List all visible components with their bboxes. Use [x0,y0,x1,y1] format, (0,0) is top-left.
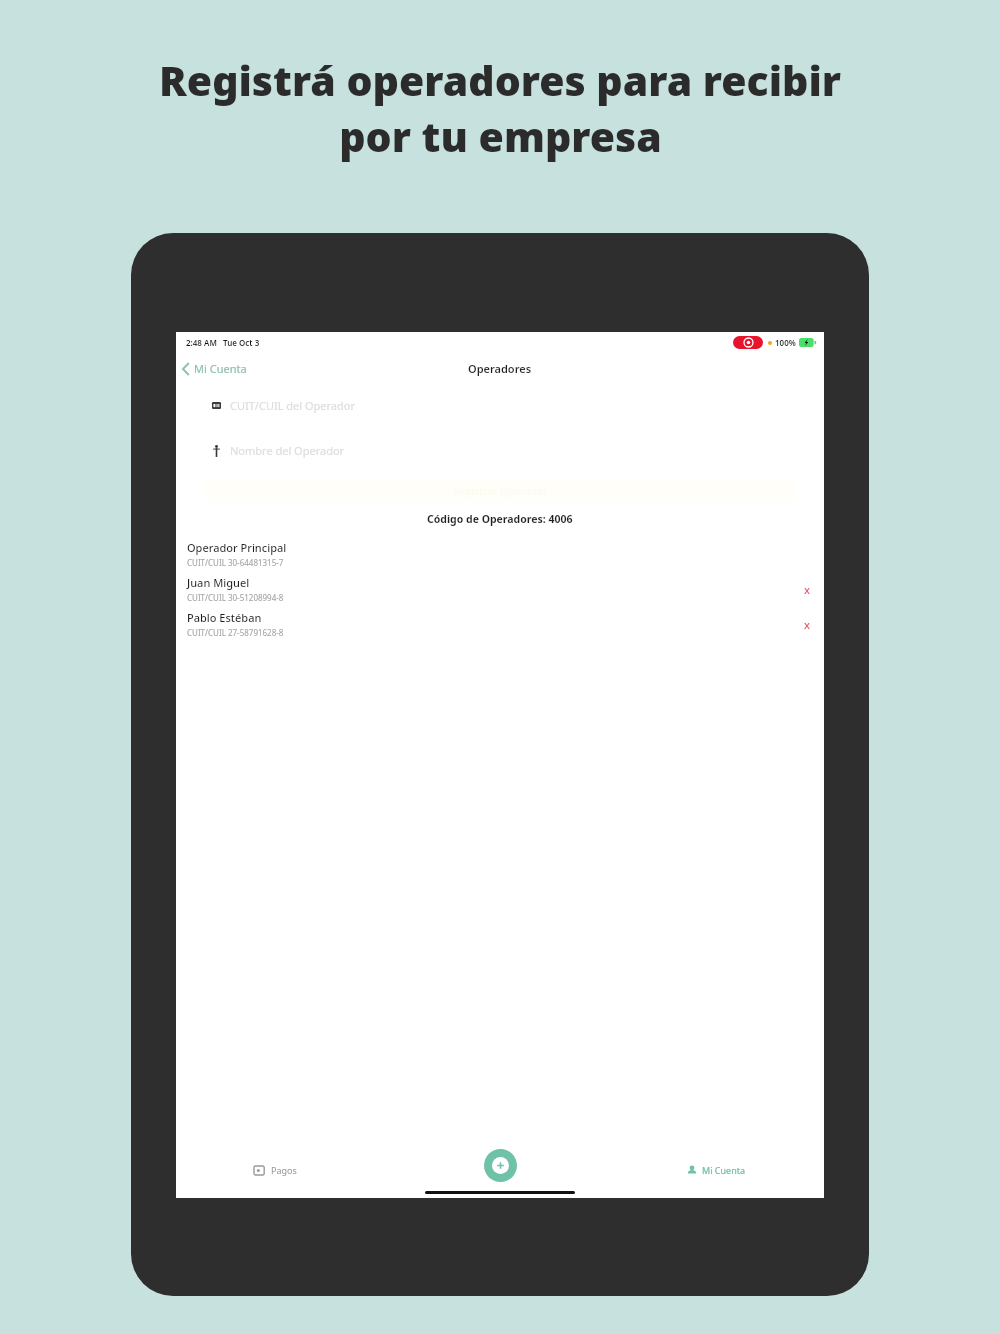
button[interactable]: Operador Principal [176,536,824,571]
staticText: Mi Cuenta [702,1164,746,1176]
staticText: CUIT/CUIL 30-51208994-8 [187,592,284,603]
button[interactable]: Nombre del Operador [176,440,824,461]
staticText: CUIT/CUIL 30-64481315-7 [187,557,284,568]
button[interactable]: Mi Cuenta [176,357,255,380]
staticText: Pablo Estéban [187,610,262,625]
button[interactable]: Eliminar operador [798,580,816,598]
staticText: 100% [775,337,796,348]
button[interactable]: Juan Miguel [176,571,824,606]
staticText: Pagos [271,1164,297,1176]
staticText: Tue Oct 3 [223,337,260,348]
staticText: x [804,617,810,632]
staticText: CUIT/CUIL del Operador [230,398,355,413]
staticText: Registrá operadores para recibir [159,52,841,108]
staticText: CUIT/CUIL 27-58791628-8 [187,627,284,638]
staticText: por tu empresa [339,108,662,164]
button[interactable]: CUIT/CUIL del Operador [176,395,824,416]
button[interactable]: Pablo Estéban [176,606,824,641]
button[interactable]: Eliminar operador [798,615,816,633]
staticText: Código de Operadores: 4006 [427,512,573,526]
staticText: Juan Miguel [187,575,250,590]
button[interactable]: Pagos [248,1158,303,1182]
staticText: Operadores [468,361,532,376]
button[interactable]: Agregar [484,1149,517,1182]
button[interactable]: Mi Cuenta [681,1158,752,1182]
staticText: Nombre del Operador [230,443,345,458]
staticText: 2:48 AM [186,337,217,348]
staticText: Mi Cuenta [194,361,247,376]
staticText: x [804,582,810,597]
staticText: Operador Principal [187,540,287,555]
